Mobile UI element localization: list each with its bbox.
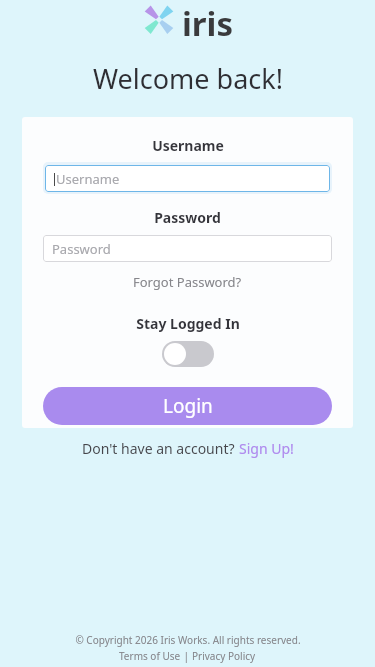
staticText: Terms of Use xyxy=(119,649,181,663)
staticText: | xyxy=(181,649,192,663)
staticText: Password xyxy=(154,208,221,227)
staticText: Forgot Password? xyxy=(133,273,242,291)
staticText: Login xyxy=(163,393,213,419)
button[interactable]: Terms of Use xyxy=(119,649,181,663)
staticText: Sign Up! xyxy=(239,439,294,458)
button[interactable]: Privacy Policy xyxy=(192,649,256,663)
button[interactable]: Login xyxy=(43,387,332,425)
staticText: © Copyright 2026 Iris Works. All rights … xyxy=(75,633,301,647)
staticText: Username xyxy=(56,170,120,188)
staticText: Password xyxy=(52,240,111,258)
button[interactable]: Password xyxy=(43,235,332,262)
button[interactable]: Forgot Password? xyxy=(131,271,244,293)
button[interactable]: Stay Logged In toggle xyxy=(162,341,214,367)
staticText: Don't have an account? xyxy=(82,439,239,458)
staticText: Username xyxy=(152,136,224,155)
staticText: iris xyxy=(182,1,234,39)
staticText: Stay Logged In xyxy=(136,314,240,333)
staticText: Privacy Policy xyxy=(192,649,256,663)
button[interactable]: Sign Up! xyxy=(239,439,294,458)
staticText: Welcome back! xyxy=(93,60,283,97)
button[interactable]: Username xyxy=(45,165,330,192)
